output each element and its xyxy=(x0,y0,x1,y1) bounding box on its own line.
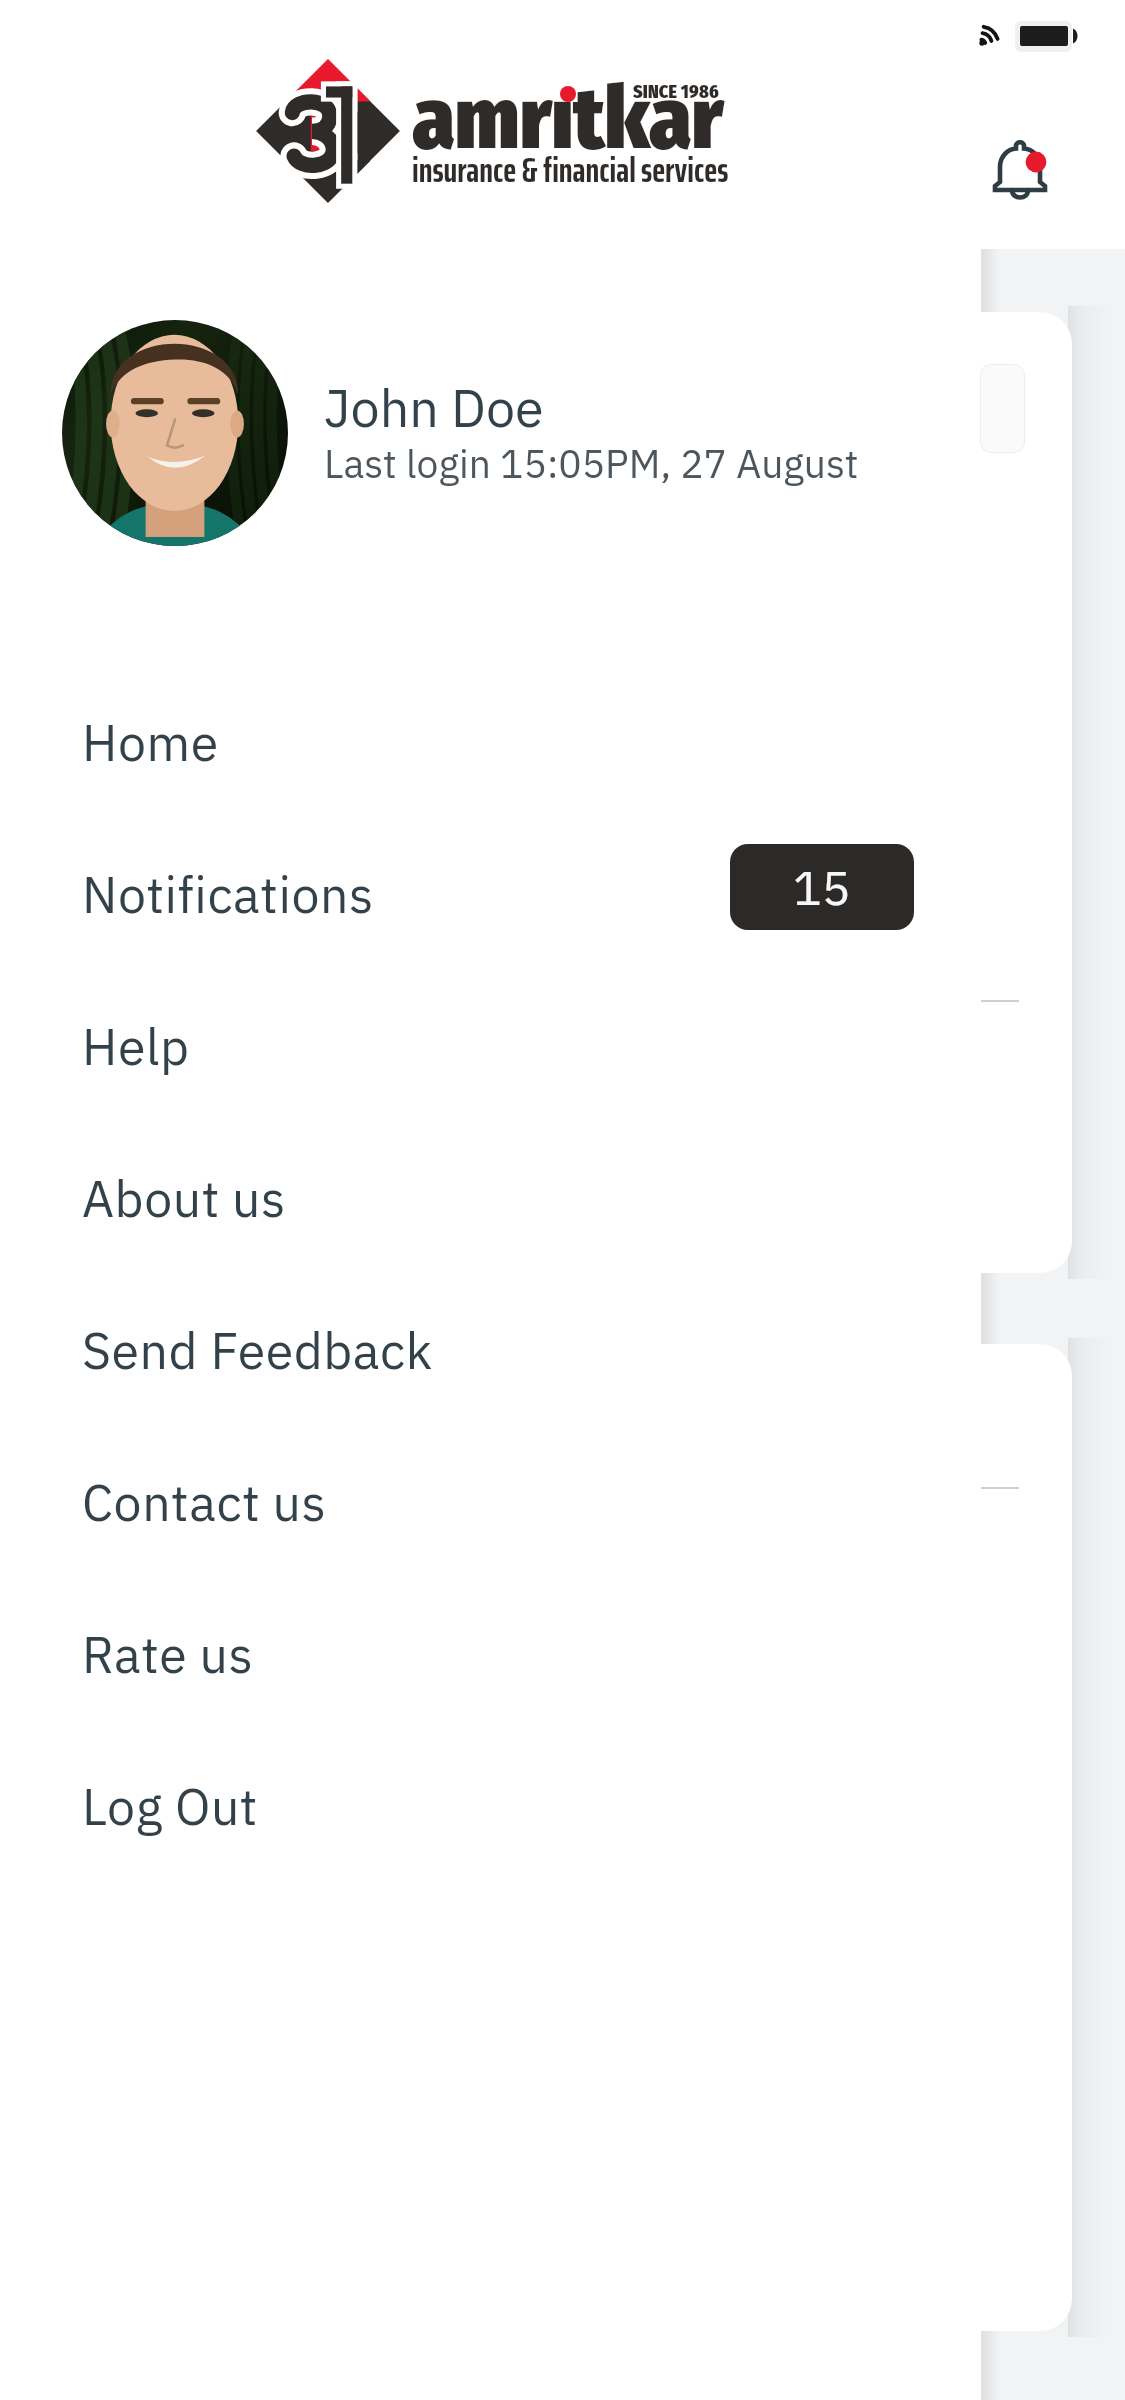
staticText: Help xyxy=(82,1014,190,1079)
button[interactable]: About us xyxy=(0,1122,1125,1274)
staticText: 15 xyxy=(793,856,851,918)
staticText: insurance & financial services xyxy=(412,142,729,197)
staticText: Rate us xyxy=(82,1622,254,1687)
staticText: SINCE 1986 xyxy=(633,81,719,103)
staticText: Last login 15:05PM, 27 August xyxy=(324,438,859,489)
button[interactable]: Notifications xyxy=(0,818,1125,970)
staticText: John Doe xyxy=(324,374,544,442)
button[interactable]: Log Out xyxy=(0,1730,1125,1882)
staticText: amritkar xyxy=(412,68,724,171)
button[interactable]: Send Feedback xyxy=(0,1274,1125,1426)
button[interactable]: Home xyxy=(0,666,1125,818)
staticText: Log Out xyxy=(82,1774,258,1839)
button[interactable]: Contact us xyxy=(0,1426,1125,1578)
button[interactable]: 15 xyxy=(730,844,914,930)
staticText: Contact us xyxy=(82,1470,327,1535)
button[interactable]: Help xyxy=(0,970,1125,1122)
staticText: Notifications xyxy=(82,862,374,927)
button[interactable]: Amritkar insurance & financial services xyxy=(252,55,872,207)
staticText: Home xyxy=(82,710,219,775)
button[interactable]: John Doe xyxy=(62,320,859,546)
staticText: Send Feedback xyxy=(82,1318,433,1383)
button[interactable]: Rate us xyxy=(0,1578,1125,1730)
button[interactable]: Notifications xyxy=(979,132,1055,208)
staticText: About us xyxy=(82,1166,286,1231)
